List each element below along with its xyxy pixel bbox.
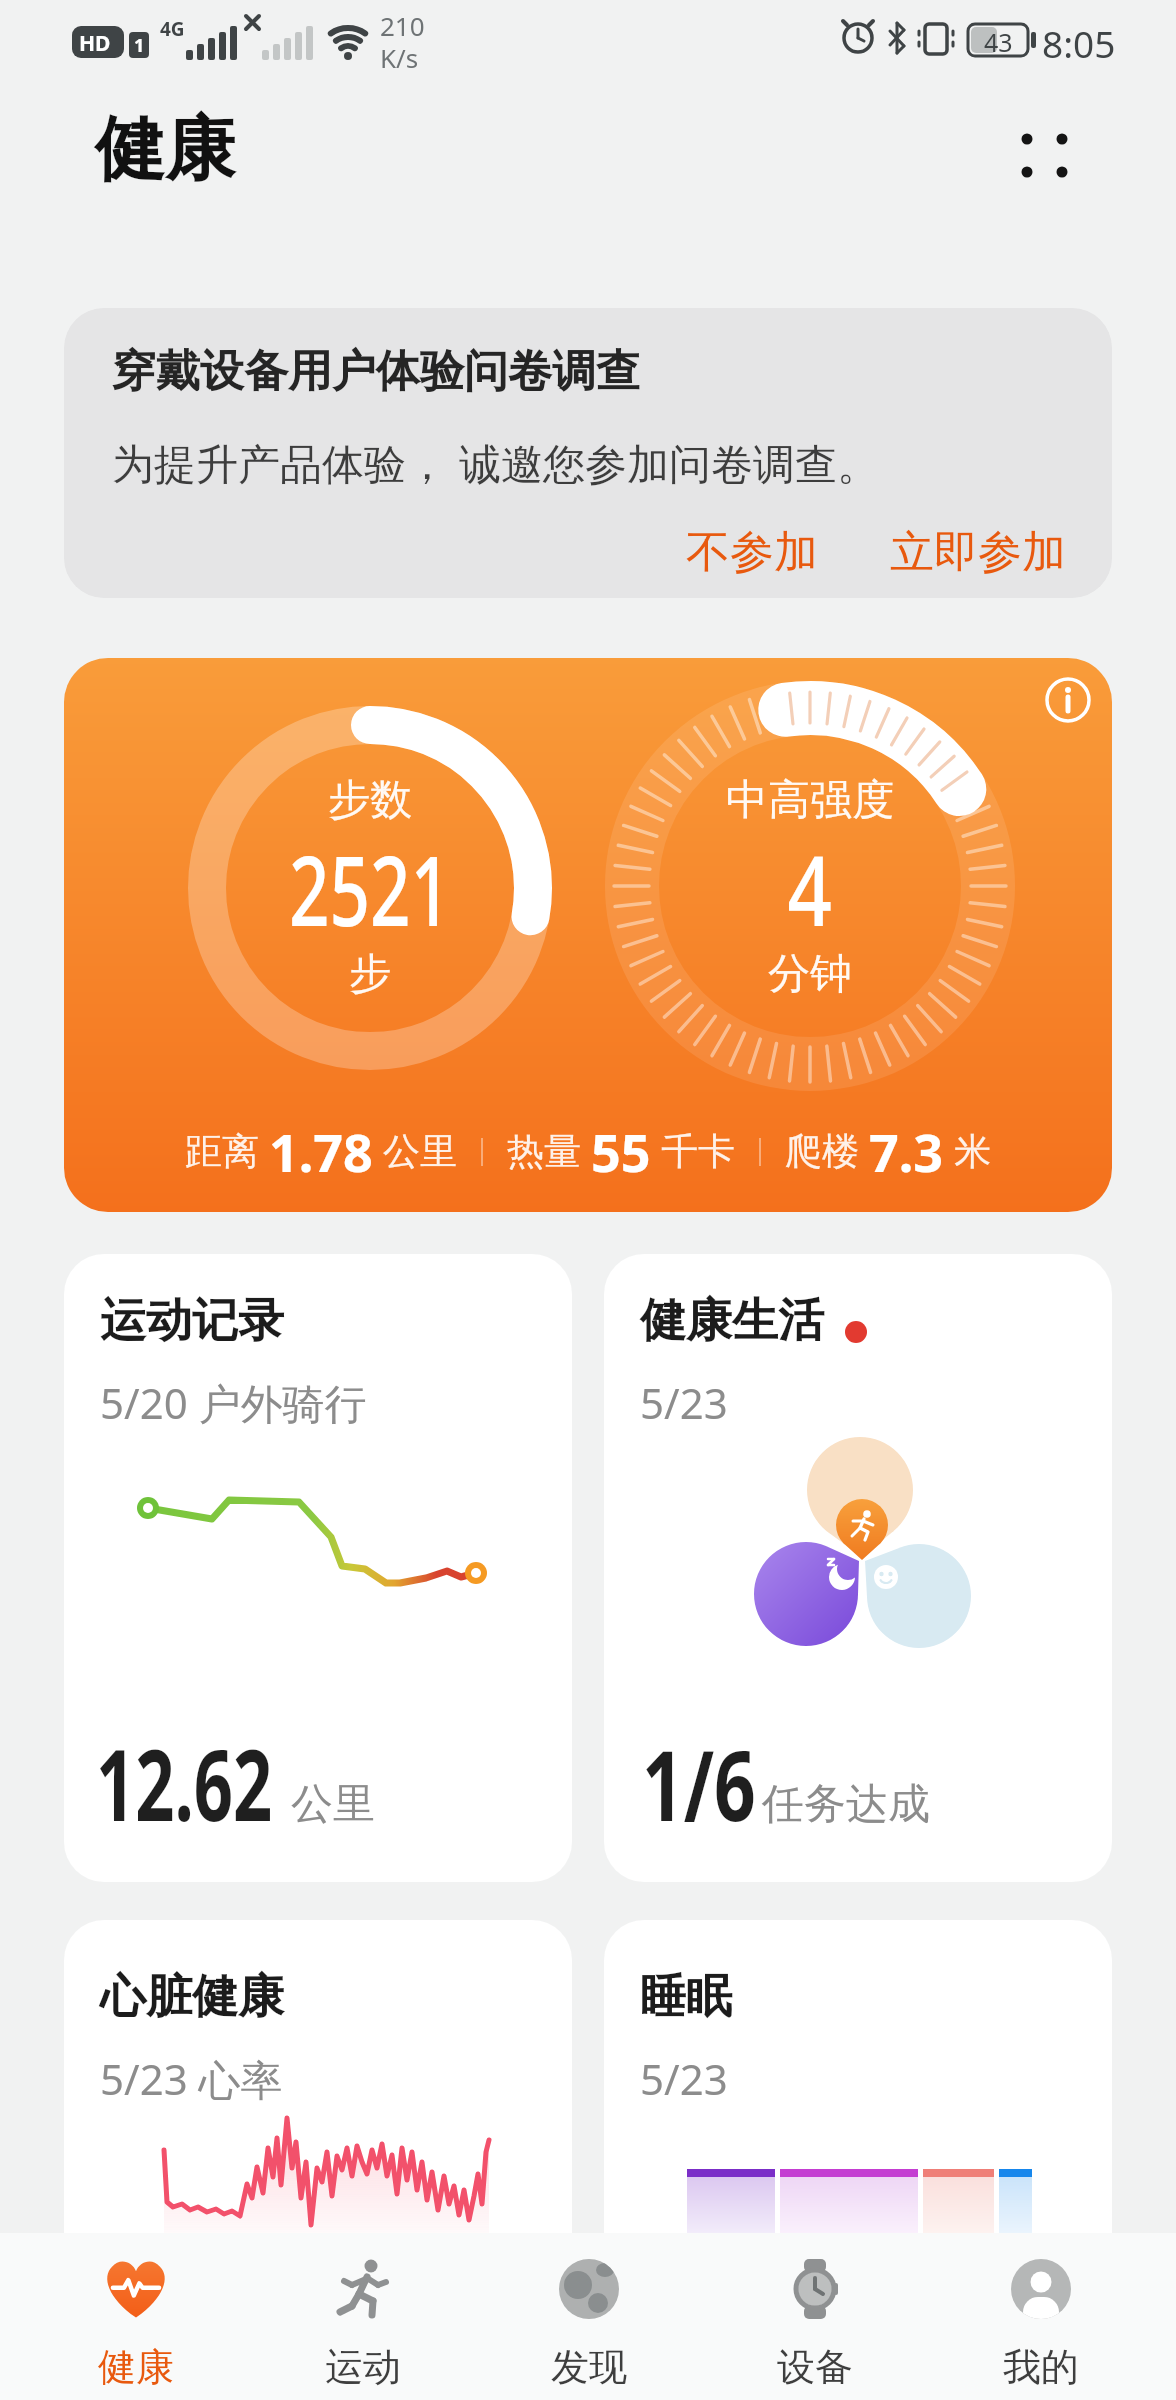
button[interactable]: 睡眠	[604, 1920, 1112, 2233]
button[interactable]	[1005, 115, 1085, 195]
staticText: 公里	[291, 1778, 375, 1831]
button[interactable]: 我的	[928, 2233, 1154, 2400]
staticText: 健康生活	[640, 1292, 824, 1350]
button[interactable]: 设备	[702, 2233, 928, 2400]
staticText: 43	[984, 25, 1013, 59]
staticText: 8:05	[1042, 18, 1116, 68]
staticText: 中高强度	[726, 774, 894, 827]
staticText: 我的	[1003, 2343, 1079, 2391]
staticText: 不参加	[686, 525, 818, 580]
staticText: 设备	[777, 2343, 853, 2391]
staticText: 为提升产品体验， 诚邀您参加问卷调查。	[112, 434, 879, 491]
staticText: 12.62	[96, 1716, 272, 1849]
button[interactable]	[1040, 672, 1096, 728]
button[interactable]: 发现	[476, 2233, 702, 2400]
staticText: 千卡	[661, 1128, 735, 1175]
staticText: 任务达成	[762, 1778, 930, 1831]
button[interactable]: 运动	[249, 2233, 476, 2400]
staticText: 热量	[507, 1128, 581, 1175]
button[interactable]: 步数	[64, 658, 1112, 1212]
staticText: 距离	[185, 1128, 259, 1175]
button[interactable]: 不参加	[674, 513, 830, 592]
staticText: 运动	[325, 2343, 401, 2391]
staticText: K/s	[380, 40, 419, 75]
staticText: HD	[79, 29, 111, 58]
staticText: 1	[134, 33, 145, 58]
staticText: 步	[349, 948, 391, 1001]
staticText: 1.78	[269, 1116, 373, 1187]
button[interactable]: 立即参加	[878, 513, 1078, 592]
staticText: 健康	[98, 2343, 174, 2391]
button[interactable]: 健康	[22, 2233, 249, 2400]
staticText: 4	[788, 822, 832, 954]
staticText: 5/23 心率	[100, 2050, 283, 2107]
staticText: 心脏健康	[100, 1968, 284, 2026]
staticText: 5/23	[640, 2050, 728, 2107]
staticText: 爬楼	[785, 1128, 859, 1175]
staticText: 4G	[160, 16, 185, 42]
button[interactable]: 健康生活	[604, 1254, 1112, 1882]
staticText: 公里	[383, 1128, 457, 1175]
staticText: 发现	[551, 2343, 627, 2391]
staticText: 分钟	[768, 948, 852, 1001]
staticText: 米	[954, 1128, 991, 1175]
button[interactable]: 心脏健康	[64, 1920, 572, 2233]
staticText: 1/6	[642, 1718, 756, 1849]
staticText: 5/20 户外骑行	[100, 1374, 367, 1431]
staticText: 穿戴设备用户体验问卷调查	[112, 344, 640, 399]
staticText: 55	[591, 1116, 651, 1187]
staticText: 步数	[328, 774, 412, 827]
staticText: 2521	[289, 822, 451, 954]
button[interactable]: 运动记录	[64, 1254, 572, 1882]
staticText: 睡眠	[640, 1968, 732, 2026]
staticText: 立即参加	[890, 525, 1066, 580]
staticText: 运动记录	[100, 1292, 284, 1350]
staticText: 5/23	[640, 1374, 728, 1431]
staticText: 健康	[95, 106, 235, 194]
staticText: 210	[380, 8, 425, 43]
staticText: 7.3	[869, 1116, 944, 1187]
